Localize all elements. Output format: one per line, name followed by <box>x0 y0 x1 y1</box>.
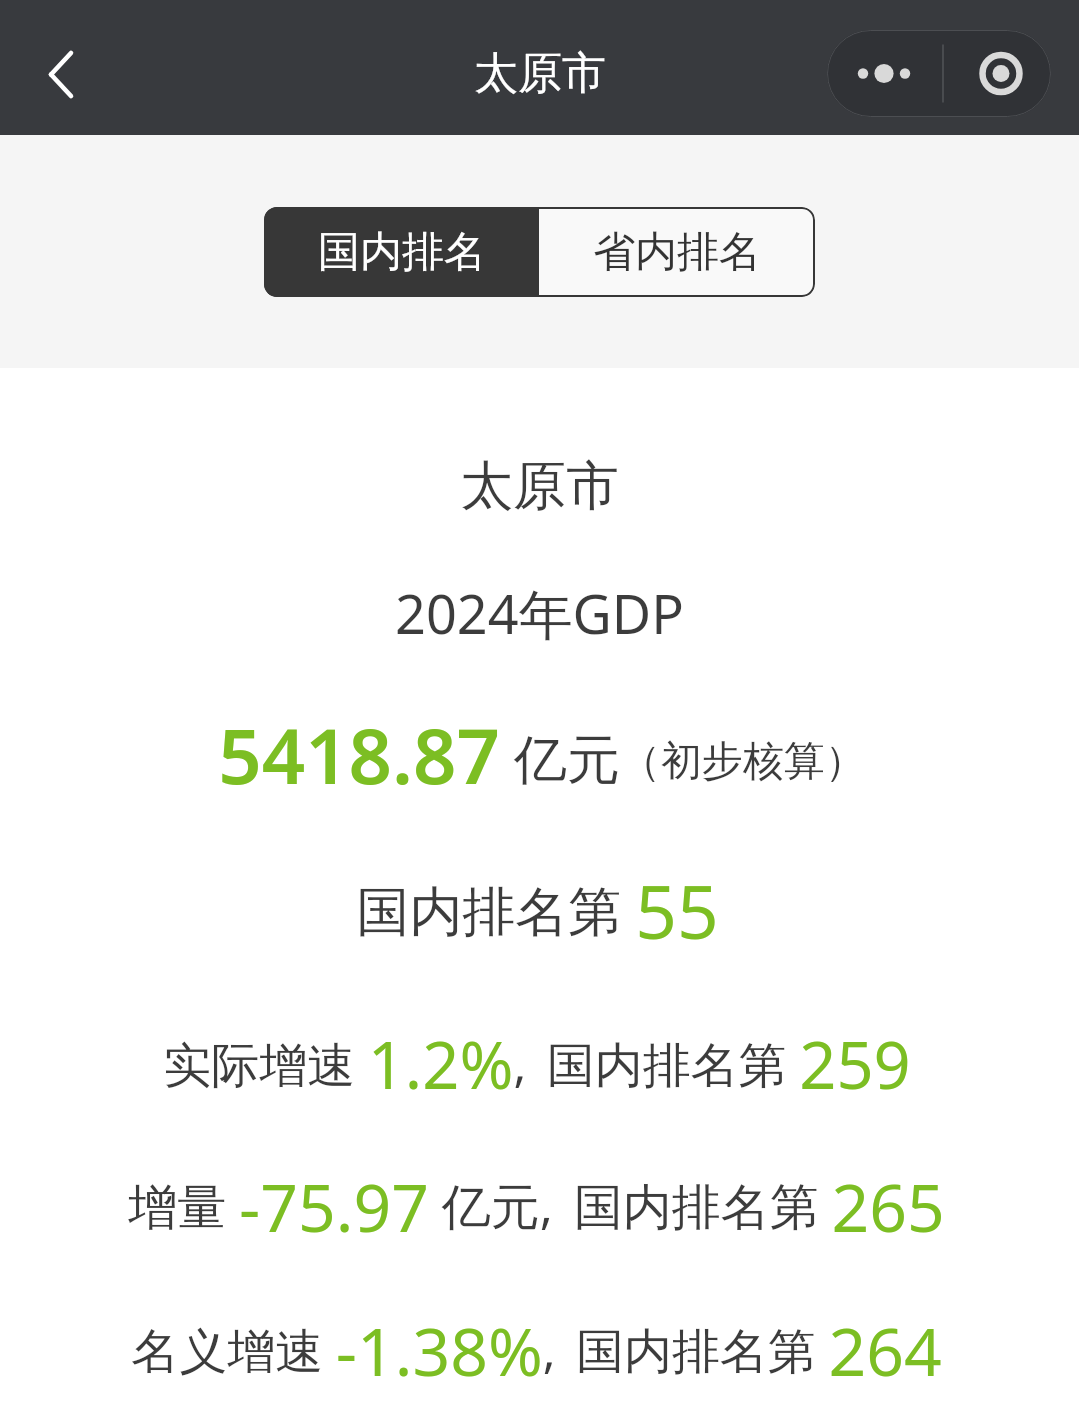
staticText: 太原市 <box>474 46 606 101</box>
button[interactable]: Back <box>25 39 95 109</box>
staticText: 5418.87 亿元（初步核算） <box>218 703 866 807</box>
button[interactable]: More options <box>827 30 943 117</box>
staticText: 2024年GDP <box>395 576 684 650</box>
staticText: 太原市 <box>460 453 619 520</box>
staticText: 名义增速 -1.38%, 国内排名第 264 <box>131 1305 942 1395</box>
button[interactable]: Close mini program <box>943 30 1051 117</box>
button[interactable]: 国内排名 <box>264 207 539 297</box>
staticText: 国内排名 <box>318 226 486 279</box>
staticText: 国内排名第 55 <box>356 861 719 960</box>
button[interactable]: 省内排名 <box>539 207 815 297</box>
staticText: 省内排名 <box>593 226 761 279</box>
staticText: 实际增速 1.2%, 国内排名第 259 <box>163 1020 911 1109</box>
staticText: 增量 -75.97 亿元, 国内排名第 265 <box>128 1161 945 1251</box>
